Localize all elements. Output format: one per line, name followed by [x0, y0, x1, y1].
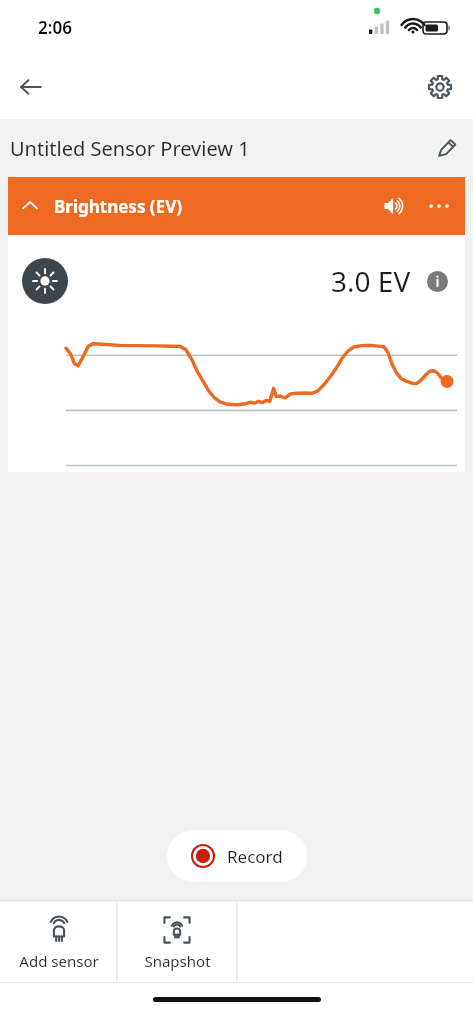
- button[interactable]: Settings: [417, 64, 463, 110]
- staticText: Snapshot: [144, 951, 211, 971]
- button[interactable]: Brightness (EV): [8, 177, 465, 235]
- staticText: 3.0 EV: [331, 262, 411, 300]
- staticText: Untitled Sensor Preview 1: [10, 135, 250, 162]
- button[interactable]: Back: [8, 64, 54, 110]
- button[interactable]: Info: [421, 265, 453, 297]
- staticText: 2:06: [38, 16, 72, 39]
- button[interactable]: Snapshot: [117, 901, 237, 983]
- button[interactable]: Add sensor: [0, 901, 117, 983]
- staticText: Brightness (EV): [54, 195, 182, 218]
- button[interactable]: Sound: [373, 184, 417, 228]
- button[interactable]: Record: [167, 830, 307, 882]
- button[interactable]: Rename: [425, 126, 469, 170]
- staticText: Record: [227, 845, 283, 868]
- button[interactable]: More options: [417, 184, 461, 228]
- staticText: Add sensor: [19, 951, 99, 971]
